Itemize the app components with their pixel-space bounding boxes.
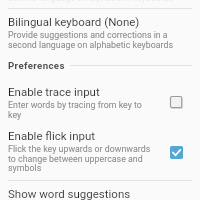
button[interactable]: Enable trace input checkbox, off — [170, 96, 183, 109]
staticText: Enable trace input — [8, 85, 100, 98]
staticText: second language on alphabetic keyboards — [8, 0, 174, 3]
staticText: Enter words by tracing from key to key — [8, 100, 156, 120]
staticText: Bilingual keyboard (None) — [8, 15, 140, 28]
staticText: Enable flick input — [8, 129, 96, 142]
button[interactable]: Enable flick input checkbox, on — [170, 146, 183, 159]
button[interactable]: Bilingual keyboard (None) — [0, 11, 200, 59]
staticText: Provide suggestions and corrections in a… — [8, 30, 174, 50]
button[interactable]: Show word suggestions — [0, 182, 200, 200]
staticText: Show word suggestions — [8, 187, 131, 200]
staticText: Preferences — [8, 60, 65, 71]
staticText: Flick the key upwards or downwards to ch… — [8, 144, 156, 173]
button[interactable]: Enable trace input — [0, 81, 200, 123]
button[interactable]: Enable flick input — [0, 125, 200, 177]
